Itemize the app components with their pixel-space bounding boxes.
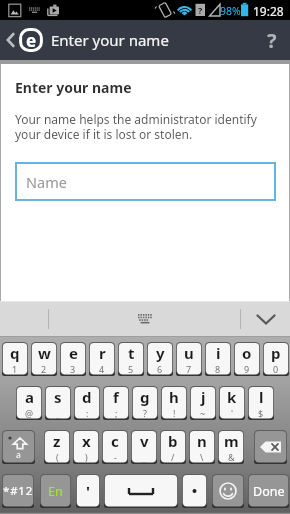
button[interactable]: u bbox=[176, 342, 202, 376]
staticText: g bbox=[140, 387, 150, 407]
staticText: \ bbox=[200, 451, 204, 463]
staticText: _ bbox=[56, 407, 60, 419]
other: Back bbox=[7, 32, 15, 48]
button[interactable]: space bbox=[104, 474, 178, 508]
staticText: *#12 bbox=[3, 483, 34, 499]
button[interactable]: i bbox=[205, 342, 231, 376]
staticText: - bbox=[114, 451, 117, 463]
button[interactable]: f bbox=[103, 386, 129, 420]
button[interactable]: d bbox=[74, 386, 100, 420]
button[interactable]: h bbox=[161, 386, 187, 420]
staticText: s bbox=[54, 387, 62, 407]
staticText: u bbox=[184, 343, 194, 363]
button[interactable]: m bbox=[218, 430, 244, 464]
staticText: i bbox=[216, 343, 221, 363]
staticText: Name bbox=[26, 172, 67, 192]
staticText: z bbox=[53, 431, 61, 451]
button[interactable]: v bbox=[131, 430, 157, 464]
staticText: 7 bbox=[186, 363, 192, 375]
button[interactable]: apos bbox=[76, 474, 100, 508]
button[interactable]: *#12 bbox=[2, 474, 34, 508]
staticText: f bbox=[113, 387, 119, 407]
staticText: ? bbox=[267, 27, 277, 54]
staticText: ( bbox=[56, 451, 59, 463]
staticText: _ bbox=[142, 451, 146, 463]
staticText: h bbox=[169, 387, 179, 407]
staticText: x bbox=[82, 431, 91, 451]
button[interactable]: p bbox=[263, 342, 289, 376]
staticText: 98% bbox=[220, 4, 241, 18]
staticText: 3 bbox=[70, 363, 76, 375]
button[interactable]: x bbox=[73, 430, 99, 464]
staticText: a bbox=[25, 387, 34, 407]
button[interactable]: Done bbox=[248, 474, 289, 508]
button[interactable]: En bbox=[40, 474, 71, 508]
button[interactable]: Hide keyboard bbox=[241, 301, 290, 337]
staticText: b bbox=[168, 431, 178, 451]
staticText: ? bbox=[198, 4, 203, 16]
button[interactable]: r bbox=[89, 342, 115, 376]
staticText: ' bbox=[231, 407, 234, 419]
button[interactable]: w bbox=[31, 342, 57, 376]
staticText: l bbox=[259, 387, 264, 407]
staticText: e bbox=[69, 343, 78, 363]
staticText: ' bbox=[86, 481, 90, 501]
staticText: e bbox=[26, 29, 37, 52]
button[interactable]: Name bbox=[15, 162, 276, 201]
button[interactable]: n bbox=[189, 430, 215, 464]
staticText: o bbox=[242, 343, 252, 363]
staticText: & bbox=[228, 451, 235, 463]
staticText: Enter your name bbox=[15, 78, 132, 97]
button[interactable]: s bbox=[45, 386, 71, 420]
staticText: a bbox=[16, 449, 21, 461]
button[interactable]: t bbox=[118, 342, 144, 376]
button[interactable]: o bbox=[234, 342, 260, 376]
staticText: n bbox=[197, 431, 207, 451]
staticText: 19:28 bbox=[253, 3, 284, 19]
staticText: Your name helps the administrator identi… bbox=[15, 111, 276, 142]
staticText: : bbox=[86, 407, 89, 419]
staticText: k bbox=[227, 387, 237, 407]
staticText: Done bbox=[253, 483, 285, 500]
button[interactable]: shift bbox=[2, 430, 35, 464]
button[interactable]: c bbox=[102, 430, 128, 464]
staticText: ~ bbox=[200, 407, 206, 419]
staticText: v bbox=[140, 431, 149, 451]
staticText: ; bbox=[115, 407, 118, 419]
staticText: @ bbox=[25, 407, 34, 419]
button[interactable]: q bbox=[2, 342, 28, 376]
staticText: 0 bbox=[273, 363, 279, 375]
button[interactable]: Help bbox=[254, 20, 290, 60]
button[interactable]: y bbox=[147, 342, 173, 376]
staticText: 4 bbox=[99, 363, 105, 375]
staticText: j bbox=[201, 387, 206, 407]
button[interactable]: backspace bbox=[254, 430, 287, 464]
staticText: Enter your name bbox=[51, 30, 169, 50]
button[interactable]: k bbox=[219, 386, 245, 420]
staticText: 2 bbox=[41, 363, 47, 375]
staticText: En bbox=[48, 483, 63, 500]
staticText: m bbox=[224, 431, 239, 451]
staticText: 1 bbox=[12, 363, 18, 375]
button[interactable]: e bbox=[60, 342, 86, 376]
button[interactable]: Back bbox=[0, 20, 169, 60]
staticText: r bbox=[99, 343, 106, 363]
button[interactable]: l bbox=[248, 386, 274, 420]
button[interactable]: a bbox=[16, 386, 42, 420]
staticText: w bbox=[38, 343, 51, 363]
button[interactable]: Change keyboard bbox=[49, 301, 240, 337]
staticText: 6 bbox=[157, 363, 163, 375]
staticText: 8 bbox=[215, 363, 221, 375]
staticText: ? bbox=[143, 407, 147, 419]
button[interactable]: b bbox=[160, 430, 186, 464]
staticText: 5 bbox=[128, 363, 134, 375]
staticText: ! bbox=[173, 407, 176, 419]
button[interactable]: g bbox=[132, 386, 158, 420]
button[interactable]: z bbox=[44, 430, 70, 464]
staticText: y bbox=[156, 343, 165, 363]
button[interactable]: j bbox=[190, 386, 216, 420]
staticText: q bbox=[10, 343, 20, 363]
button[interactable]: emoji bbox=[212, 474, 244, 508]
button[interactable]: period bbox=[182, 474, 207, 508]
staticText: / bbox=[171, 451, 175, 463]
